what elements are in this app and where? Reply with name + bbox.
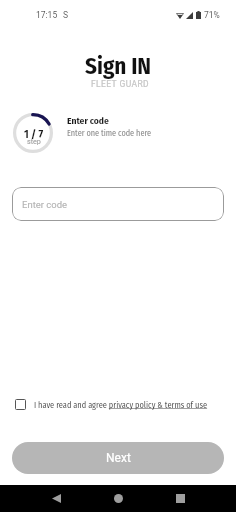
button[interactable]: Home bbox=[98, 485, 138, 512]
button[interactable]: Next bbox=[12, 442, 224, 474]
staticText: Enter one time code here bbox=[67, 128, 152, 138]
staticText: I have read and agree privacy policy & t… bbox=[34, 400, 208, 410]
staticText: step bbox=[27, 137, 41, 145]
staticText: 1 / 7 bbox=[24, 128, 44, 141]
staticText: 17:15 bbox=[36, 10, 58, 20]
staticText: Next bbox=[106, 451, 131, 465]
staticText: 71% bbox=[204, 10, 220, 20]
staticText: Enter code bbox=[67, 115, 109, 126]
staticText: Enter code bbox=[22, 199, 68, 210]
staticText: Sign IN bbox=[85, 52, 152, 80]
button[interactable]: Accept terms bbox=[15, 399, 236, 410]
staticText: S bbox=[63, 10, 69, 20]
button[interactable]: Recent apps bbox=[160, 485, 200, 512]
staticText: FLEET GUARD bbox=[91, 79, 150, 89]
button[interactable]: Back bbox=[36, 485, 76, 512]
other: Accept terms bbox=[15, 399, 26, 410]
button[interactable]: Enter code bbox=[12, 187, 224, 221]
